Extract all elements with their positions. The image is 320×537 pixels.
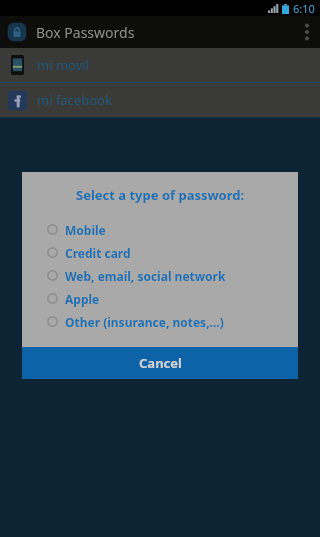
- staticText: mi facebook: [37, 91, 112, 109]
- button[interactable]: mi facebook: [0, 83, 320, 117]
- staticText: Credit card: [65, 245, 131, 261]
- button[interactable]: Apple: [22, 287, 298, 310]
- button[interactable]: Mobile: [22, 218, 298, 241]
- staticText: Mobile: [65, 222, 106, 238]
- staticText: Box Passwords: [36, 23, 135, 42]
- button[interactable]: Web, email, social network: [22, 264, 298, 287]
- button[interactable]: Credit card: [22, 241, 298, 264]
- staticText: Apple: [65, 291, 100, 307]
- staticText: Web, email, social network: [65, 268, 226, 284]
- button[interactable]: mi movil: [0, 48, 320, 82]
- button[interactable]: Cancel: [22, 347, 298, 379]
- staticText: mi movil: [37, 56, 89, 74]
- staticText: Select a type of password:: [76, 186, 245, 204]
- button[interactable]: More options: [294, 16, 320, 48]
- staticText: Other (insurance, notes,...): [65, 314, 224, 330]
- staticText: 6:10: [293, 1, 315, 16]
- staticText: Cancel: [139, 354, 182, 372]
- button[interactable]: Other (insurance, notes,...): [22, 310, 298, 333]
